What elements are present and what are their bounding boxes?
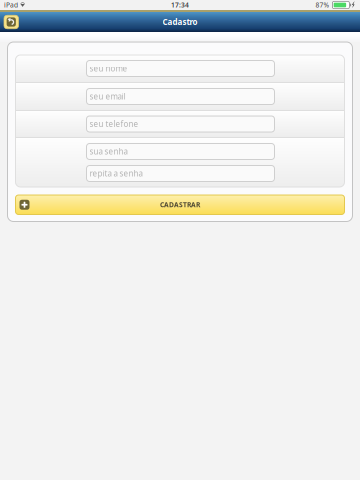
staticText: sua senha xyxy=(89,146,127,157)
button[interactable]: Back xyxy=(4,15,18,29)
staticText: CADASTRAR xyxy=(160,200,200,209)
staticText: 17:34 xyxy=(171,1,189,9)
staticText: seu email xyxy=(89,91,125,102)
staticText: iPad xyxy=(4,1,18,9)
staticText: seu nome xyxy=(89,63,127,74)
staticText: seu telefone xyxy=(89,119,138,129)
staticText: repita a senha xyxy=(89,168,142,179)
staticText: 87% xyxy=(315,1,329,9)
button[interactable]: CADASTRAR xyxy=(15,195,344,214)
staticText: Cadastro xyxy=(162,17,197,27)
